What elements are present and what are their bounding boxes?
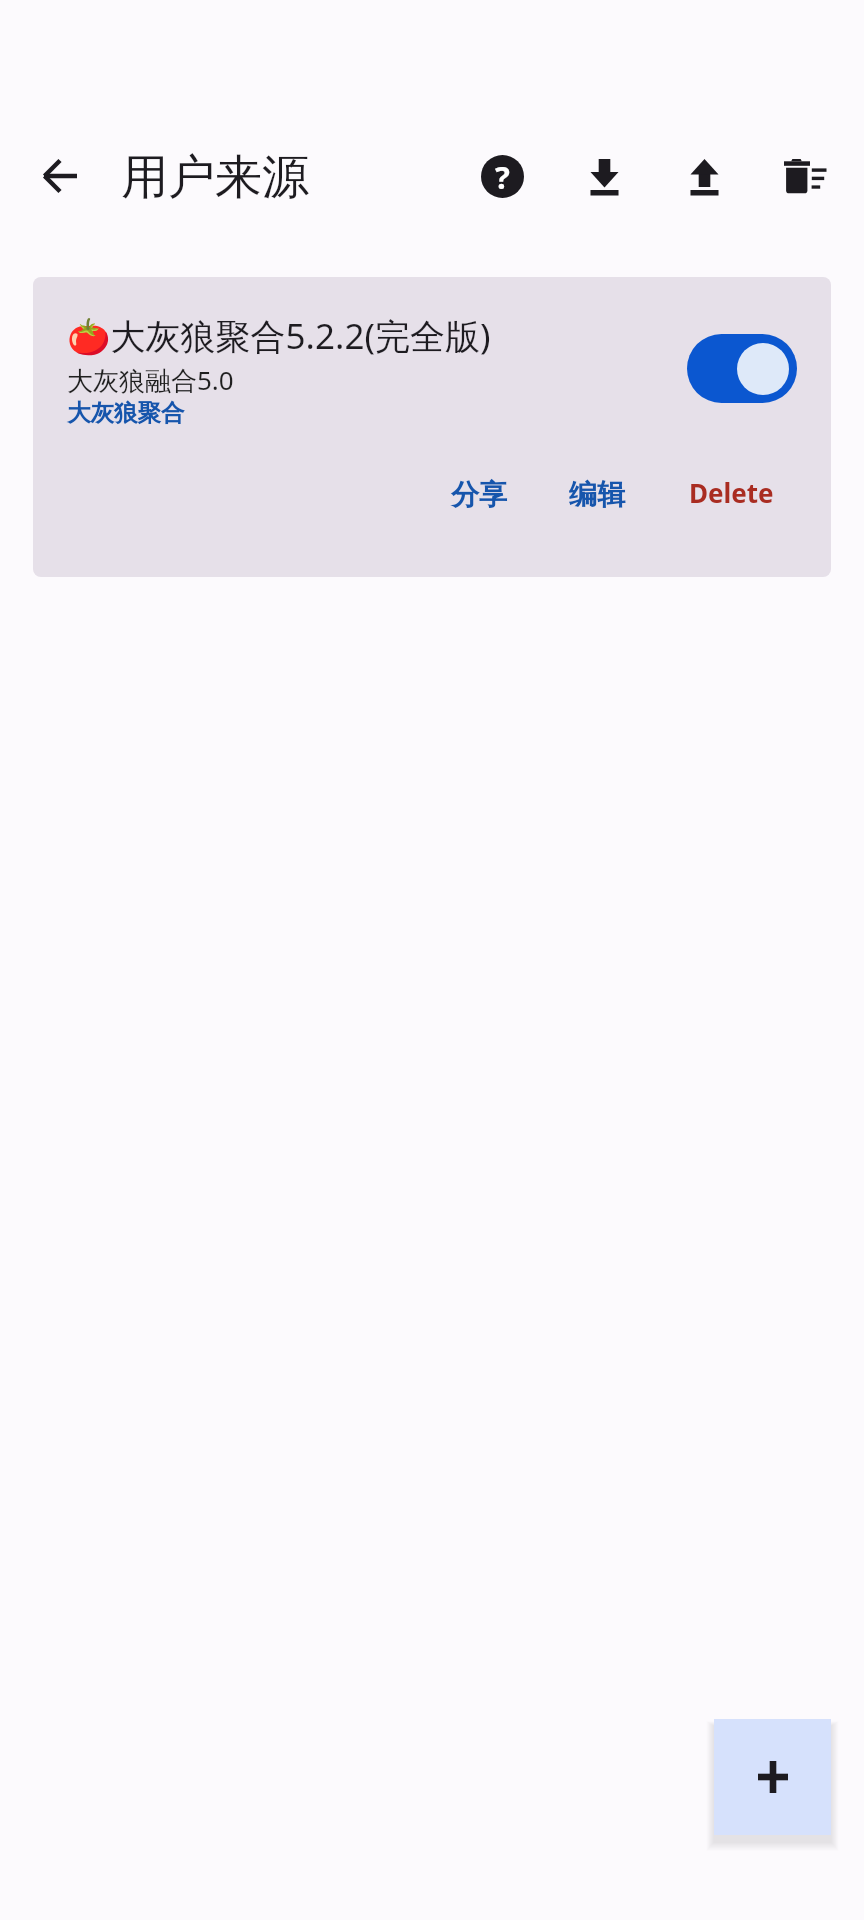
- button[interactable]: 分享: [435, 463, 523, 526]
- staticText: Delete: [689, 475, 774, 510]
- staticText: 大灰狼融合5.0: [67, 362, 234, 398]
- button[interactable]: Help: [458, 132, 546, 220]
- button[interactable]: Back: [24, 140, 96, 212]
- button[interactable]: 编辑: [553, 463, 641, 526]
- staticText: 大灰狼聚合: [67, 398, 185, 428]
- staticText: ?: [495, 156, 510, 198]
- staticText: 🍅大灰狼聚合5.2.2(完全版): [67, 312, 491, 360]
- button[interactable]: Download: [560, 132, 648, 220]
- button[interactable]: Delete all: [761, 132, 849, 220]
- button[interactable]: 🍅大灰狼聚合5.2.2(完全版): [33, 277, 831, 577]
- staticText: 编辑: [569, 477, 625, 512]
- button[interactable]: Add: [714, 1719, 831, 1835]
- staticText: 分享: [451, 477, 507, 512]
- staticText: 用户来源: [121, 148, 309, 207]
- button[interactable]: Enabled: [687, 334, 797, 403]
- button[interactable]: Upload: [660, 132, 748, 220]
- button[interactable]: Delete: [673, 461, 790, 524]
